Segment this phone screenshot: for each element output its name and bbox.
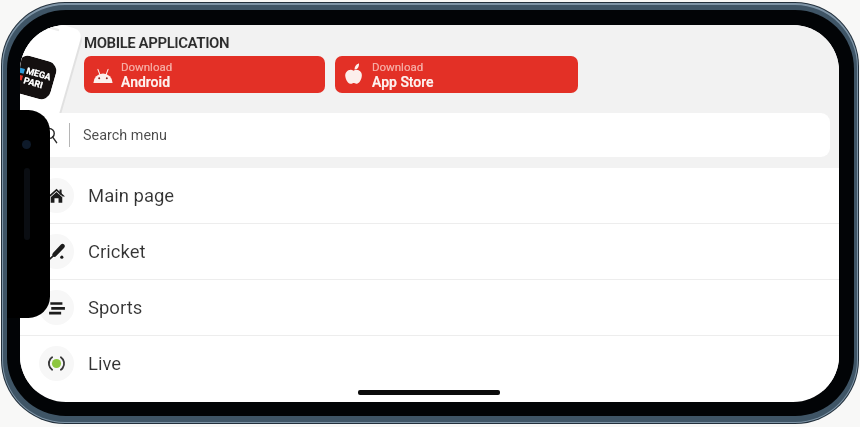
button[interactable]: Cricket [20,224,839,279]
staticText: Live [88,353,122,375]
staticText: Download [372,60,424,73]
button[interactable]: Live [20,336,839,391]
other: Android [93,65,113,85]
staticText: Sports [88,297,143,319]
staticText: Main page [88,185,175,207]
other: Sports [48,299,66,317]
button[interactable]: Sports [20,280,839,335]
staticText: Search menu [83,127,167,144]
staticText: MOBILE APPLICATION [84,34,230,52]
button[interactable]: App Store [335,56,578,93]
other: App Store [343,64,364,85]
other: Cricket [47,242,66,261]
staticText: App Store [372,74,434,90]
staticText: MEGA PARI [22,66,53,92]
other: Search [42,127,59,144]
button[interactable]: Android [84,56,325,93]
button[interactable]: Main page [20,168,839,223]
other: Live [47,354,66,373]
button[interactable]: Search [20,113,830,157]
staticText: Download [121,60,173,73]
staticText: Android [121,74,171,90]
staticText: Cricket [88,241,146,263]
